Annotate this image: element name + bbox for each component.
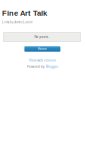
staticText: Blogger bbox=[46, 65, 58, 68]
staticText: Powered by bbox=[27, 65, 46, 68]
staticText: View web version bbox=[29, 58, 56, 62]
button[interactable]: Blogger bbox=[46, 65, 58, 68]
staticText: . bbox=[58, 65, 59, 68]
staticText: Fine Art Talk bbox=[2, 9, 47, 17]
button[interactable]: Home bbox=[24, 46, 60, 52]
staticText: Links by James Loarie bbox=[2, 20, 33, 24]
staticText: No posts. bbox=[34, 35, 49, 39]
button[interactable]: View web version bbox=[29, 58, 56, 62]
staticText: Home bbox=[38, 47, 47, 51]
